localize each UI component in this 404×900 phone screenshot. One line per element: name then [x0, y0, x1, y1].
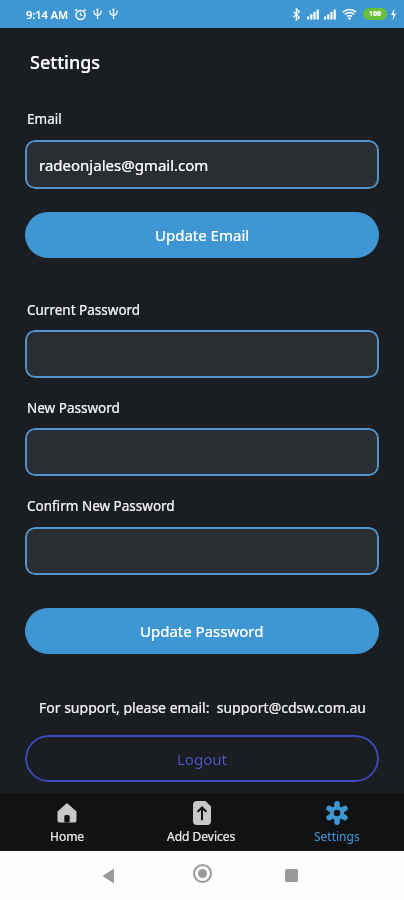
staticText: Add Devices	[167, 828, 236, 844]
button[interactable]: Add Devices	[134, 793, 269, 851]
button[interactable]: radeonjales@gmail.com	[25, 140, 379, 189]
staticText: Update Password	[140, 621, 264, 641]
staticText: Home	[50, 828, 85, 844]
button[interactable]: Home	[0, 793, 134, 851]
staticText: 9:14 AM	[26, 7, 69, 22]
staticText: Confirm New Password	[27, 497, 175, 514]
button[interactable]: Update Password	[25, 608, 379, 654]
staticText: Logout	[177, 749, 227, 769]
button[interactable]	[25, 428, 379, 476]
staticText: Email	[27, 110, 62, 127]
button[interactable]: Settings	[269, 793, 404, 851]
button[interactable]: Update Email	[25, 212, 379, 258]
staticText: radeonjales@gmail.com	[39, 155, 209, 175]
button[interactable]	[25, 527, 379, 575]
staticText: Settings	[30, 50, 101, 75]
staticText: Update Email	[155, 225, 250, 245]
button[interactable]: Logout	[25, 735, 379, 782]
staticText: New Password	[27, 399, 120, 416]
staticText: 100	[369, 9, 382, 19]
button[interactable]	[25, 330, 379, 378]
staticText: For support, please email: support@cdsw.…	[39, 698, 366, 715]
staticText: Current Password	[27, 301, 141, 318]
staticText: Settings	[314, 828, 360, 844]
